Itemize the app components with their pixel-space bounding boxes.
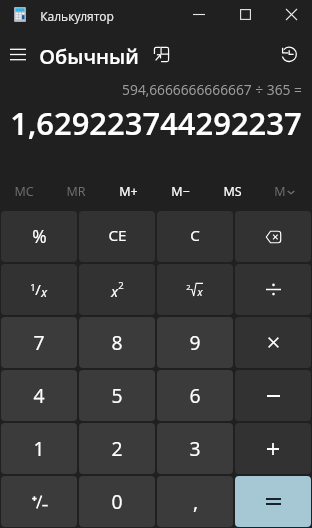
staticText: %	[32, 224, 47, 248]
button[interactable]: MC	[0, 171, 50, 211]
staticText: 2	[118, 279, 124, 292]
button[interactable]: CE	[79, 211, 155, 262]
button[interactable]: M−	[154, 171, 206, 211]
staticText: /	[35, 279, 41, 299]
staticText: M−	[171, 183, 190, 200]
button[interactable]: C	[157, 211, 233, 262]
staticText: 6	[189, 382, 201, 408]
staticText: x	[111, 282, 118, 301]
button[interactable]: MS	[206, 171, 258, 211]
button[interactable]: 4	[1, 370, 77, 421]
button[interactable]: Backspace	[235, 211, 311, 262]
button[interactable]: M+	[102, 171, 154, 211]
staticText: 4	[33, 382, 45, 408]
staticText: 2	[186, 282, 191, 292]
staticText: 5	[111, 382, 123, 408]
button[interactable]: History	[271, 38, 307, 74]
button[interactable]: Maximize	[222, 0, 268, 32]
staticText: x	[197, 285, 203, 298]
button[interactable]: Square root	[157, 264, 233, 315]
staticText: Обычный	[39, 43, 139, 70]
staticText: 9	[189, 329, 201, 355]
button[interactable]: Keep on top	[148, 41, 178, 71]
button[interactable]: M	[258, 171, 310, 211]
button[interactable]: 0	[79, 476, 155, 527]
button[interactable]: ,	[157, 476, 233, 527]
staticText: 3	[189, 435, 201, 461]
staticText: MS	[223, 183, 242, 200]
button[interactable]: Plus minus	[1, 476, 77, 527]
button[interactable]: Equals	[235, 476, 311, 527]
button[interactable]: 7	[1, 317, 77, 368]
button[interactable]: Open navigation	[0, 38, 36, 74]
staticText: Калькулятор	[40, 8, 114, 24]
staticText: 8	[111, 329, 123, 355]
staticText: MR	[66, 183, 86, 200]
staticText: M	[274, 183, 286, 200]
button[interactable]: Plus	[235, 423, 311, 474]
button[interactable]: Minus	[235, 370, 311, 421]
staticText: 2	[111, 435, 123, 461]
staticText: 7	[33, 329, 45, 355]
button[interactable]: MR	[50, 171, 102, 211]
staticText: 1,629223744292237	[10, 102, 302, 144]
staticText: x	[41, 284, 47, 300]
button[interactable]: Close	[268, 0, 312, 32]
staticText: M+	[119, 183, 138, 200]
button[interactable]: 2	[79, 423, 155, 474]
staticText: 1	[33, 435, 45, 461]
button[interactable]: 1	[1, 423, 77, 474]
staticText: CE	[108, 225, 127, 246]
button[interactable]: Square	[79, 264, 155, 315]
staticText: 594,6666666666667 ÷ 365 =	[122, 80, 302, 99]
button[interactable]: 3	[157, 423, 233, 474]
button[interactable]: 6	[157, 370, 233, 421]
staticText: C	[190, 225, 200, 246]
staticText: 0	[111, 488, 123, 514]
staticText: MC	[14, 183, 34, 200]
button[interactable]: Minimize	[176, 0, 222, 32]
staticText: 1	[30, 281, 36, 294]
button[interactable]: Reciprocal	[1, 264, 77, 315]
button[interactable]: 5	[79, 370, 155, 421]
button[interactable]: Multiply	[235, 317, 311, 368]
button[interactable]: 8	[79, 317, 155, 368]
button[interactable]: %	[1, 211, 77, 262]
button[interactable]: Divide	[235, 264, 311, 315]
button[interactable]: 9	[157, 317, 233, 368]
staticText: ,	[193, 488, 198, 514]
